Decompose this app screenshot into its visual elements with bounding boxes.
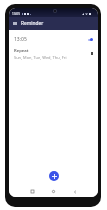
button[interactable]: Home [51,189,56,194]
staticText: 13:05 [14,36,27,43]
button[interactable]: Repeat [9,47,98,60]
staticText: Repeat [14,48,29,54]
button[interactable]: Add reminder [49,171,59,181]
button[interactable]: Recents [30,189,35,194]
button[interactable]: 13:05 [9,33,98,46]
staticText: 13:05 [12,12,20,16]
staticText: Reminder [21,20,44,27]
staticText: Sun, Mon, Tue, Wed, Thu, Fri [14,55,67,60]
button[interactable]: Back [72,189,77,194]
button[interactable]: Menu [11,20,18,27]
